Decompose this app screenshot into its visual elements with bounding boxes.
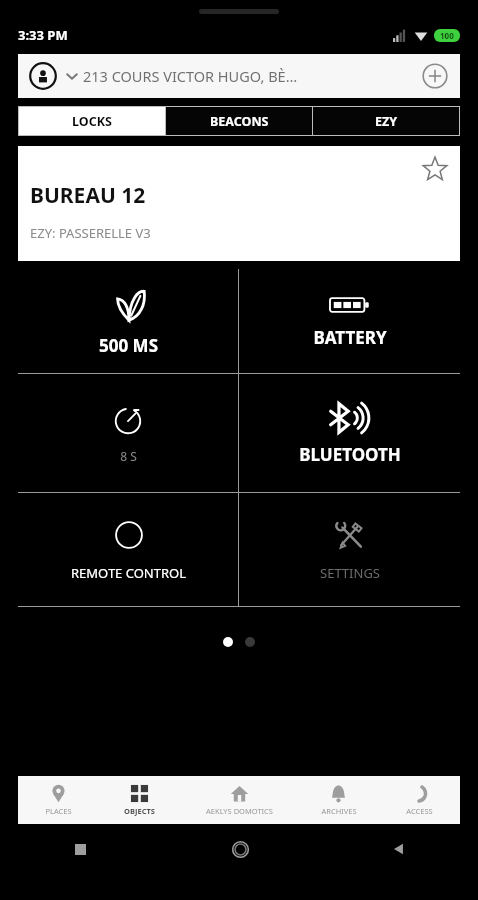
staticText: 3:33 PM [18,26,68,44]
button[interactable]: Back [384,834,414,864]
button[interactable]: EZY [313,107,459,135]
button[interactable]: OBJECTS [99,776,180,824]
staticText: PLACES [45,806,72,816]
staticText: BEACONS [210,113,269,130]
staticText: EZY: PASSERELLE V3 [30,224,151,242]
staticText: AEKLYS DOMOTICS [206,806,273,816]
button[interactable]: REMOTE CONTROL [18,493,238,606]
button[interactable]: Account [18,54,460,98]
staticText: BATTERY [313,326,387,349]
staticText: 8 S [120,448,137,464]
button[interactable]: AEKLYS DOMOTICS [180,776,298,824]
button[interactable]: PLACES [18,776,99,824]
staticText: SETTINGS [320,564,380,582]
button[interactable]: BEACONS [166,107,312,135]
button[interactable]: Add [420,61,450,91]
button[interactable] [245,637,255,647]
staticText: ARCHIVES [321,806,357,816]
button[interactable]: SETTINGS [239,493,460,606]
button[interactable]: Favorite [18,146,460,261]
button[interactable]: Favorite [420,154,450,184]
staticText: 213 COURS VICTOR HUGO, BÈ… [83,66,414,86]
button[interactable]: Account [28,61,58,91]
button[interactable]: BLUETOOTH [239,374,460,492]
staticText: LOCKS [72,113,112,130]
staticText: REMOTE CONTROL [71,564,186,582]
button[interactable]: 8 S [18,374,238,492]
button[interactable]: ACCESS [379,776,460,824]
button[interactable]: Home [225,834,255,864]
button[interactable]: BATTERY [239,269,460,373]
staticText: OBJECTS [124,806,155,816]
button[interactable]: LOCKS [19,107,165,135]
staticText: BLUETOOTH [299,443,401,466]
staticText: ACCESS [406,806,433,816]
button[interactable]: Recents [65,834,95,864]
button[interactable]: ARCHIVES [298,776,379,824]
button[interactable]: 500 MS [18,269,238,373]
staticText: 100 [440,30,454,41]
staticText: EZY [375,113,398,130]
staticText: 500 MS [99,334,158,357]
staticText: BUREAU 12 [30,181,146,210]
button[interactable] [223,637,233,647]
